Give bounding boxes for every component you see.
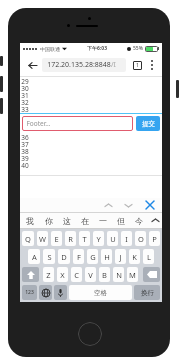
staticText: 空格 (94, 289, 107, 297)
staticText: 38 (21, 147, 29, 154)
button[interactable]: C (71, 267, 82, 282)
button[interactable]: 123 (22, 285, 37, 300)
staticText: 提交 (142, 120, 155, 128)
staticText: B (102, 270, 107, 280)
staticText: 中国联通 (40, 46, 60, 52)
staticText: C (74, 270, 79, 280)
staticText: V (88, 270, 93, 280)
button[interactable]: More options (146, 59, 158, 71)
staticText: U (110, 234, 116, 244)
button[interactable]: F (73, 249, 84, 264)
staticText: 30 (21, 84, 29, 91)
button[interactable]: 这 (58, 213, 76, 228)
staticText: 这 (63, 216, 71, 226)
button[interactable]: L (143, 249, 154, 264)
button[interactable]: D (58, 249, 70, 264)
button[interactable]: Voice input (54, 285, 67, 300)
button[interactable]: H (101, 249, 112, 264)
button[interactable]: Q (22, 231, 34, 246)
button[interactable]: 我 (20, 213, 39, 228)
staticText: M (129, 270, 136, 280)
staticText: 但 (117, 216, 125, 226)
button[interactable]: J (115, 249, 126, 264)
button[interactable]: Next field (121, 198, 135, 212)
button[interactable]: E (51, 231, 62, 246)
button[interactable]: G (87, 249, 98, 264)
staticText: /I (111, 60, 116, 70)
staticText: O (138, 234, 144, 244)
button[interactable]: 你 (39, 213, 58, 228)
staticText: 你 (45, 216, 53, 226)
button[interactable]: Backspace (143, 267, 160, 282)
staticText: X (60, 270, 65, 280)
button[interactable]: R (65, 231, 76, 246)
staticText: Y (96, 234, 101, 244)
button[interactable]: 空格 (69, 285, 132, 300)
button[interactable]: 172.20.135.28:8848 (42, 58, 126, 72)
staticText: Z (46, 270, 51, 280)
staticText: R (68, 234, 73, 244)
staticText: W (39, 234, 46, 244)
staticText: P (152, 234, 157, 244)
button[interactable]: Switch language (39, 285, 52, 300)
button[interactable]: P (149, 231, 160, 246)
button[interactable]: Close keyboard (143, 198, 157, 212)
button[interactable]: B (99, 267, 110, 282)
staticText: 我 (26, 216, 34, 226)
button[interactable]: 但 (112, 213, 130, 228)
staticText: 一 (99, 216, 107, 226)
button[interactable]: More candidates (148, 213, 162, 228)
staticText: 31 (21, 91, 29, 98)
staticText: 40 (21, 161, 29, 168)
staticText: D (61, 252, 67, 262)
button[interactable]: Footer... (22, 116, 133, 131)
button[interactable]: 在 (76, 213, 94, 228)
staticText: E (54, 234, 59, 244)
button[interactable]: A (28, 249, 40, 264)
button[interactable]: 今 (130, 213, 148, 228)
staticText: A (32, 252, 37, 262)
staticText: Q (25, 234, 31, 244)
staticText: 39 (21, 154, 29, 161)
staticText: T (82, 234, 87, 244)
staticText: Footer... (26, 119, 51, 128)
button[interactable]: W (37, 231, 48, 246)
staticText: 今 (135, 216, 143, 226)
button[interactable]: O (135, 231, 146, 246)
button[interactable]: Tabs (130, 58, 144, 72)
button[interactable]: T (79, 231, 90, 246)
staticText: 在 (81, 216, 89, 226)
button[interactable]: 提交 (136, 116, 160, 131)
button[interactable]: U (107, 231, 118, 246)
staticText: 36 (21, 133, 29, 140)
staticText: N (116, 270, 122, 280)
button[interactable]: X (57, 267, 68, 282)
staticText: 换行 (141, 289, 154, 297)
staticText: S (47, 252, 52, 262)
button[interactable]: N (113, 267, 124, 282)
button[interactable]: Z (43, 267, 54, 282)
staticText: 1 (136, 62, 139, 69)
staticText: 33 (21, 105, 29, 112)
button[interactable]: Previous field (101, 198, 115, 212)
button[interactable]: M (127, 267, 138, 282)
button[interactable]: 一 (94, 213, 112, 228)
button[interactable]: 换行 (134, 285, 160, 300)
staticText: 下午6:03 (87, 45, 107, 52)
staticText: 123 (25, 289, 34, 296)
button[interactable]: K (129, 249, 140, 264)
staticText: H (104, 252, 110, 262)
button[interactable]: V (85, 267, 96, 282)
button[interactable]: Back (24, 57, 40, 73)
button[interactable]: Shift (22, 267, 39, 282)
button[interactable]: S (43, 249, 55, 264)
staticText: J (119, 252, 122, 262)
staticText: 55% (133, 45, 143, 52)
button[interactable]: Y (93, 231, 104, 246)
staticText: 37 (21, 140, 29, 147)
staticText: L (147, 252, 151, 262)
staticText: F (77, 252, 81, 262)
button[interactable]: I (121, 231, 132, 246)
staticText: 29 (21, 77, 29, 84)
staticText: G (90, 252, 96, 262)
